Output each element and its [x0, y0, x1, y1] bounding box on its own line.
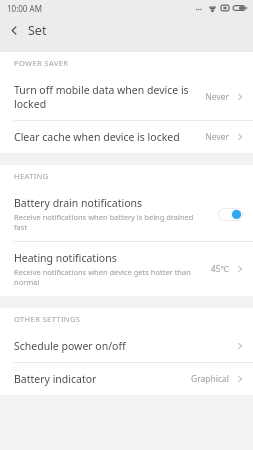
button[interactable]: Schedule power on/off — [0, 330, 253, 362]
button[interactable]: Back — [0, 16, 28, 44]
button[interactable]: Toggle battery drain notifications — [218, 208, 243, 221]
staticText: Turn off mobile data when device is lock… — [14, 83, 189, 111]
staticText: Battery indicator — [14, 372, 97, 386]
staticText: 45℃ — [210, 263, 229, 275]
staticText: 10:00 AM — [7, 3, 42, 14]
button[interactable]: Battery drain notifications — [0, 187, 253, 241]
staticText: Graphical — [190, 373, 229, 385]
staticText: OTHER SETTINGS — [14, 314, 81, 324]
staticText: Receive notifications when battery is be… — [14, 212, 194, 232]
staticText: Never — [205, 131, 229, 143]
staticText: Heating notifications — [14, 251, 117, 265]
staticText: HEATING — [14, 171, 49, 181]
staticText: Clear cache when device is locked — [14, 130, 180, 144]
button[interactable]: Heating notifications — [0, 242, 253, 296]
staticText: Set — [28, 22, 47, 39]
staticText: Receive notifications when device gets h… — [14, 267, 191, 287]
button[interactable]: Battery indicator — [0, 363, 253, 395]
button[interactable]: Turn off mobile data when device is lock… — [0, 74, 253, 120]
staticText: Battery drain notifications — [14, 196, 143, 210]
staticText: Never — [205, 91, 229, 103]
staticText: Schedule power on/off — [14, 339, 126, 353]
staticText: POWER SAVER — [14, 58, 69, 68]
button[interactable]: Clear cache when device is locked — [0, 121, 253, 153]
